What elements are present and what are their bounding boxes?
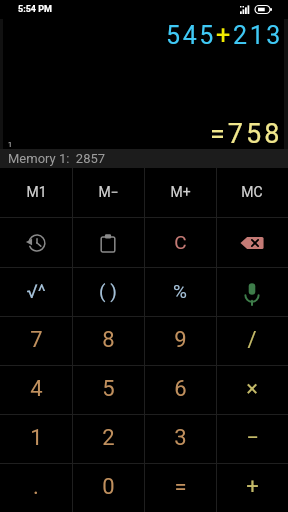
button[interactable]: Memory 1: 2857 [0, 149, 288, 168]
button[interactable]: 1 [0, 415, 72, 463]
button[interactable]: = [144, 464, 216, 512]
staticText: ( ) [99, 280, 117, 302]
staticText: 545 [166, 21, 216, 50]
button[interactable]: Paste [72, 218, 144, 267]
button[interactable]: Backspace [216, 218, 288, 267]
staticText: Memory 1: 2857 [8, 151, 106, 166]
staticText: + [246, 474, 259, 500]
button[interactable]: . [0, 464, 72, 512]
staticText: 4 [30, 376, 43, 402]
staticText: 6 [174, 376, 187, 402]
staticText: 7 [30, 327, 43, 353]
staticText: 1 [8, 141, 12, 149]
button[interactable]: 0 [72, 464, 144, 512]
staticText: √^ [26, 280, 46, 302]
staticText: . [33, 474, 39, 500]
staticText: 8 [102, 327, 115, 353]
button[interactable]: 4 [0, 366, 72, 414]
button[interactable]: 545 [3, 19, 284, 149]
staticText: 9 [174, 327, 187, 353]
staticText: C [174, 231, 187, 253]
staticText: MC [241, 184, 263, 200]
button[interactable]: M+ [144, 168, 216, 217]
button[interactable]: 8 [72, 317, 144, 365]
button[interactable]: M1 [0, 168, 72, 217]
staticText: × [246, 376, 258, 402]
staticText: 2 [102, 425, 115, 451]
staticText: + [216, 21, 233, 50]
button[interactable]: 7 [0, 317, 72, 365]
staticText: / [247, 327, 257, 353]
staticText: 3 [174, 425, 187, 451]
button[interactable]: + [216, 464, 288, 512]
staticText: M+ [170, 184, 191, 200]
button[interactable]: Voice input [216, 268, 288, 316]
button[interactable]: 2 [72, 415, 144, 463]
button[interactable]: 3 [144, 415, 216, 463]
button[interactable]: 5 [72, 366, 144, 414]
staticText: 1 [30, 425, 43, 451]
staticText: =758 [210, 118, 283, 150]
staticText: 5 [102, 376, 115, 402]
staticText: M1 [26, 184, 47, 200]
staticText: % [173, 280, 187, 302]
staticText: − [246, 425, 259, 451]
button[interactable]: ( ) [72, 268, 144, 316]
button[interactable]: % [144, 268, 216, 316]
button[interactable]: History [0, 218, 72, 267]
button[interactable]: × [216, 366, 288, 414]
staticText: = [174, 474, 187, 500]
button[interactable]: 6 [144, 366, 216, 414]
button[interactable]: √^ [0, 268, 72, 316]
staticText: M− [98, 184, 119, 200]
staticText: 5:54 PM [18, 4, 52, 15]
staticText: 0 [102, 474, 115, 500]
button[interactable]: / [216, 317, 288, 365]
staticText: 213 [233, 21, 283, 50]
button[interactable]: − [216, 415, 288, 463]
button[interactable]: C [144, 218, 216, 267]
button[interactable]: M− [72, 168, 144, 217]
button[interactable]: MC [216, 168, 288, 217]
button[interactable]: 9 [144, 317, 216, 365]
